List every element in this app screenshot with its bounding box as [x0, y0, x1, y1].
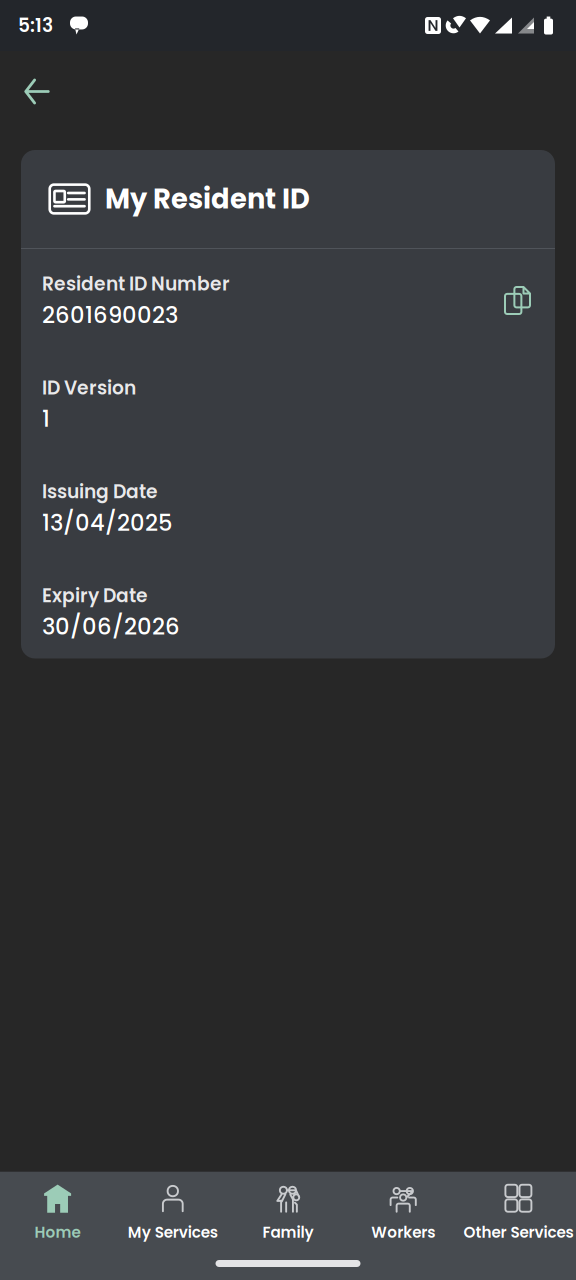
- button[interactable]: Workers: [346, 1172, 461, 1247]
- button[interactable]: Back: [12, 68, 62, 115]
- button[interactable]: Other Services: [461, 1172, 576, 1247]
- staticText: 2601690023: [42, 299, 178, 331]
- staticText: 5:13: [18, 12, 53, 38]
- staticText: Issuing Date: [42, 479, 158, 505]
- staticText: 13/04/2025: [42, 507, 172, 539]
- button[interactable]: Home: [0, 1172, 115, 1247]
- staticText: Workers: [371, 1222, 435, 1243]
- staticText: My Resident ID: [105, 180, 310, 218]
- button[interactable]: Copy Resident ID Number: [494, 271, 537, 314]
- button[interactable]: My Services: [115, 1172, 230, 1247]
- button[interactable]: Family: [230, 1172, 346, 1247]
- staticText: My Services: [128, 1222, 218, 1243]
- staticText: ID Version: [42, 375, 136, 401]
- staticText: Expiry Date: [42, 583, 148, 609]
- staticText: Resident ID Number: [42, 271, 230, 297]
- staticText: 1: [42, 403, 50, 435]
- staticText: Home: [35, 1222, 81, 1243]
- staticText: Family: [262, 1222, 313, 1243]
- staticText: Other Services: [463, 1222, 573, 1243]
- staticText: 30/06/2026: [42, 611, 180, 642]
